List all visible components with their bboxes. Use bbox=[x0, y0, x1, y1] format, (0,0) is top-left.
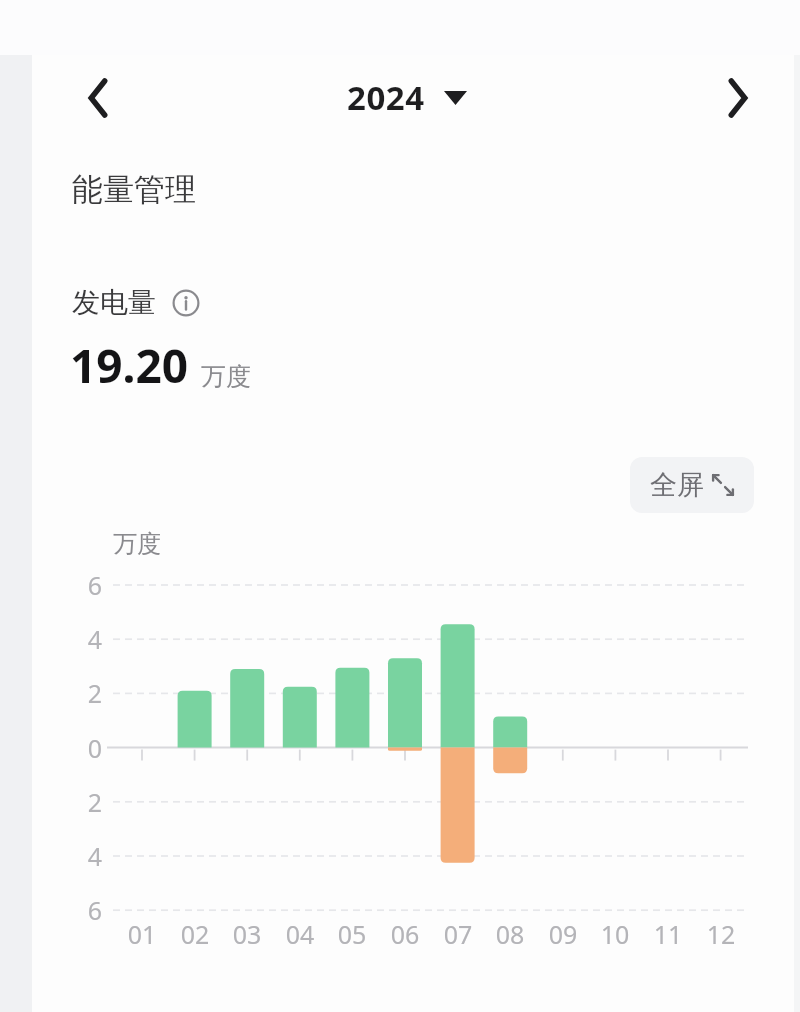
button[interactable]: 全屏 bbox=[630, 457, 754, 513]
staticText: 06 bbox=[379, 917, 431, 951]
staticText: 02 bbox=[169, 917, 221, 951]
staticText: 04 bbox=[274, 917, 326, 951]
staticText: 07 bbox=[432, 917, 484, 951]
staticText: 12 bbox=[695, 917, 747, 951]
staticText: 万度 bbox=[201, 361, 251, 392]
staticText: 11 bbox=[642, 917, 694, 951]
staticText: 09 bbox=[537, 917, 589, 951]
button[interactable]: Next year bbox=[700, 55, 774, 140]
staticText: 0 bbox=[62, 731, 102, 765]
staticText: 2024 bbox=[347, 75, 425, 120]
staticText: 6 bbox=[62, 568, 102, 602]
staticText: 能量管理 bbox=[72, 170, 196, 209]
button[interactable]: 2024 bbox=[339, 69, 475, 126]
staticText: 08 bbox=[484, 917, 536, 951]
button[interactable]: Previous year bbox=[62, 55, 136, 140]
staticText: 03 bbox=[221, 917, 273, 951]
staticText: 4 bbox=[62, 839, 102, 873]
staticText: 01 bbox=[116, 917, 168, 951]
staticText: 05 bbox=[326, 917, 378, 951]
button[interactable]: Information bbox=[171, 288, 201, 318]
staticText: 4 bbox=[62, 622, 102, 656]
staticText: 2 bbox=[62, 676, 102, 710]
staticText: 全屏 bbox=[650, 468, 704, 502]
staticText: 万度 bbox=[113, 529, 161, 559]
staticText: 2 bbox=[62, 785, 102, 819]
staticText: 6 bbox=[62, 893, 102, 927]
staticText: 19.20 bbox=[70, 334, 189, 397]
staticText: 10 bbox=[589, 917, 641, 951]
staticText: 发电量 bbox=[72, 285, 156, 320]
